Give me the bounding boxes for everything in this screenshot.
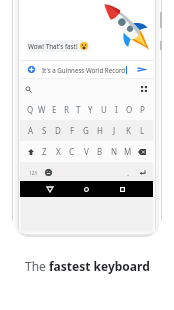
button[interactable]: Backspace — [135, 141, 149, 162]
button[interactable]: Z — [37, 141, 51, 162]
staticText: Z — [42, 146, 47, 157]
staticText: . — [127, 167, 130, 178]
staticText: R — [64, 104, 69, 115]
staticText: J — [113, 125, 116, 136]
button[interactable]: O — [123, 99, 136, 120]
button[interactable]: Q — [24, 99, 36, 120]
button[interactable]: Back — [42, 182, 57, 197]
staticText: E — [52, 104, 57, 115]
button[interactable]: R — [60, 99, 72, 120]
button[interactable]: More options — [141, 86, 147, 92]
staticText: I — [115, 104, 118, 115]
staticText: 123 — [29, 170, 37, 176]
button[interactable]: Wow! That's fast! — [26, 40, 90, 52]
staticText: Y — [88, 104, 93, 115]
staticText: M — [124, 146, 132, 157]
staticText: O — [126, 104, 133, 115]
staticText: N — [111, 146, 118, 157]
button[interactable]: Enter — [135, 162, 149, 183]
staticText: S — [42, 125, 47, 136]
button[interactable]: K — [121, 120, 135, 141]
staticText: F — [70, 125, 75, 136]
button[interactable]: L — [135, 120, 149, 141]
button[interactable]: P — [136, 99, 149, 120]
staticText: P — [140, 104, 145, 115]
button[interactable]: H — [93, 120, 107, 141]
button[interactable]: D — [51, 120, 65, 141]
button[interactable]: Search — [25, 86, 32, 93]
button[interactable]: 123 — [24, 162, 41, 183]
staticText: W — [38, 104, 46, 115]
button[interactable]: B — [93, 141, 107, 162]
staticText: The fastest keyboard — [25, 258, 150, 274]
button[interactable]: Space — [55, 162, 121, 183]
button[interactable]: S — [37, 120, 51, 141]
button[interactable]: I — [110, 99, 123, 120]
staticText: Q — [27, 104, 34, 115]
staticText: A — [28, 125, 34, 136]
button[interactable]: . — [121, 162, 135, 183]
button[interactable]: E — [48, 99, 60, 120]
staticText: L — [140, 125, 145, 136]
button[interactable]: V — [79, 141, 93, 162]
button[interactable]: Emoji — [41, 162, 55, 183]
button[interactable]: M — [121, 141, 135, 162]
button[interactable]: W — [36, 99, 48, 120]
staticText: G — [83, 125, 89, 136]
button[interactable]: T — [72, 99, 84, 120]
button[interactable]: Shift — [24, 141, 37, 162]
button[interactable]: F — [65, 120, 79, 141]
staticText: Wow! That's fast! — [28, 42, 78, 51]
staticText: B — [97, 146, 103, 157]
button[interactable]: Y — [84, 99, 97, 120]
button[interactable]: N — [107, 141, 121, 162]
staticText: T — [76, 104, 81, 115]
staticText: U — [101, 104, 107, 115]
button[interactable]: Add attachment — [28, 66, 35, 73]
staticText: X — [56, 146, 61, 157]
button[interactable]: C — [65, 141, 79, 162]
button[interactable]: Send — [137, 66, 148, 73]
button[interactable]: A — [24, 120, 37, 141]
staticText: V — [84, 146, 89, 157]
staticText: It's a Guinness World Record — [42, 66, 126, 74]
button[interactable]: Home — [79, 182, 94, 197]
button[interactable]: X — [51, 141, 65, 162]
button[interactable]: U — [97, 99, 110, 120]
button[interactable]: Recent apps — [115, 182, 130, 197]
button[interactable]: G — [79, 120, 93, 141]
staticText: D — [55, 125, 61, 136]
staticText: C — [69, 146, 75, 157]
staticText: H — [97, 125, 103, 136]
staticText: K — [126, 125, 131, 136]
button[interactable]: J — [107, 120, 121, 141]
